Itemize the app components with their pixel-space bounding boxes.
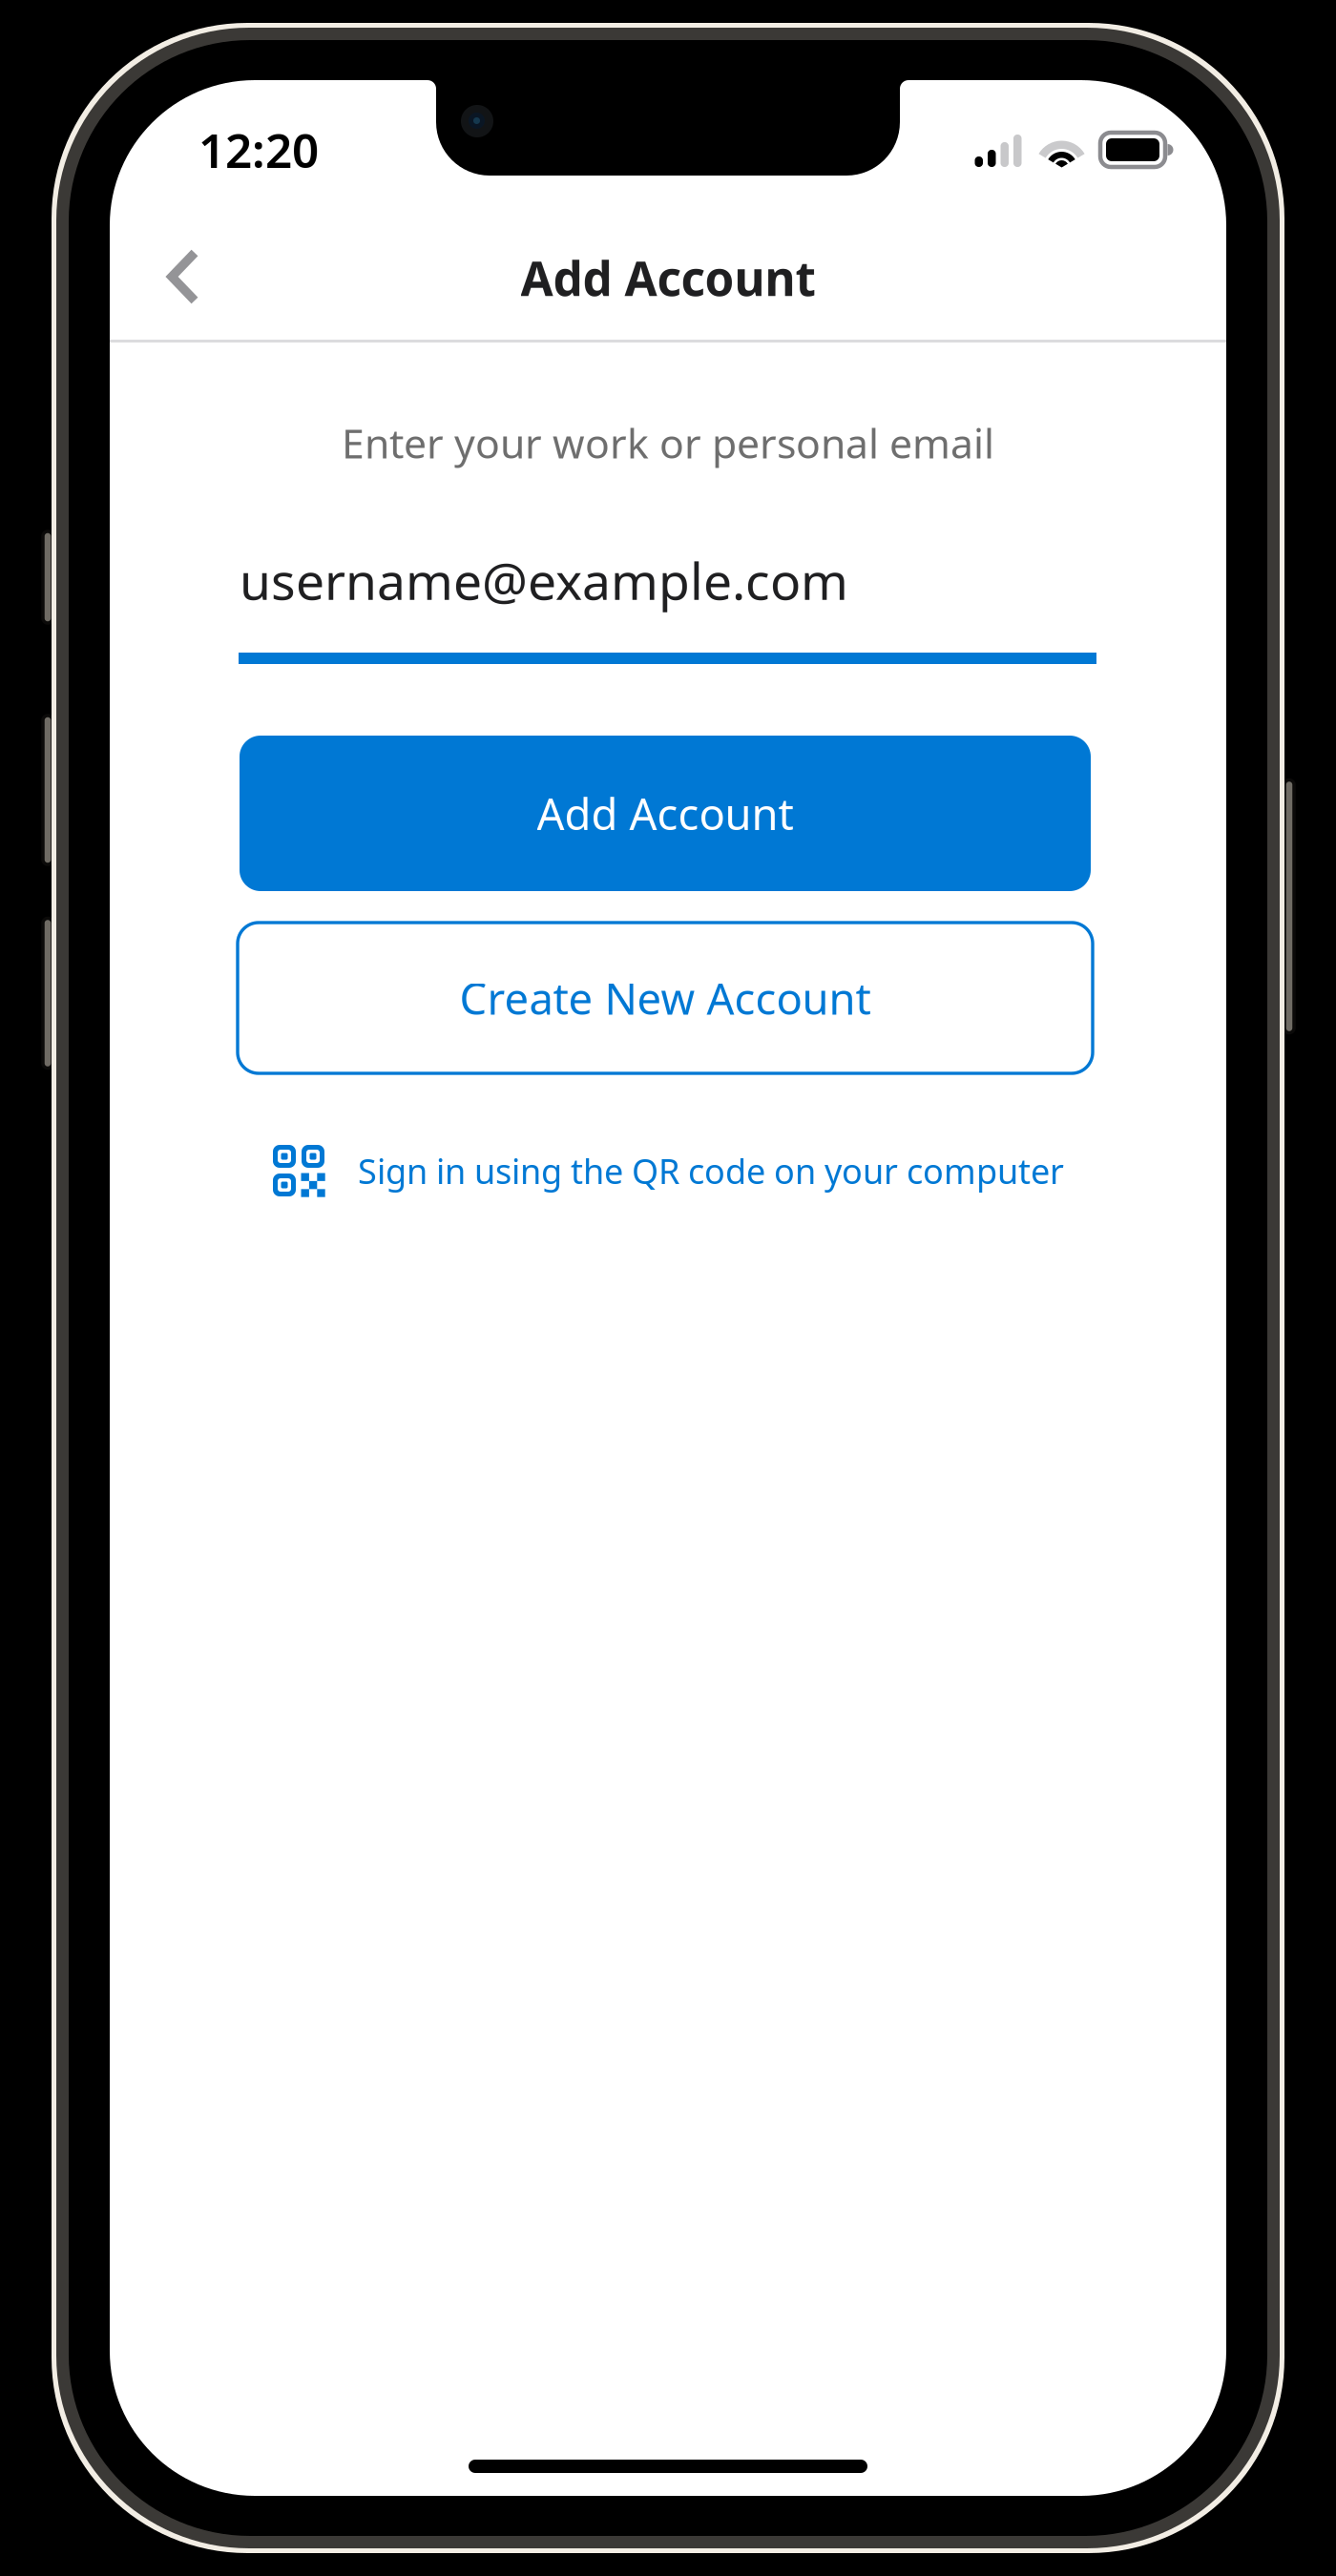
button[interactable]: Sign in using the QR code on your comput… [273,1141,1132,1200]
button[interactable]: Add Account [240,736,1091,891]
button[interactable]: Create New Account [238,923,1093,1073]
button[interactable]: Back [127,220,240,333]
staticText: 12:20 [198,118,319,181]
staticText: Add Account [537,785,793,842]
staticText: Add Account [521,246,815,309]
staticText: Enter your work or personal email [342,416,994,470]
staticText: username@example.com [240,546,848,614]
staticText: Create New Account [459,969,871,1027]
staticText: Sign in using the QR code on your comput… [358,1148,1064,1193]
